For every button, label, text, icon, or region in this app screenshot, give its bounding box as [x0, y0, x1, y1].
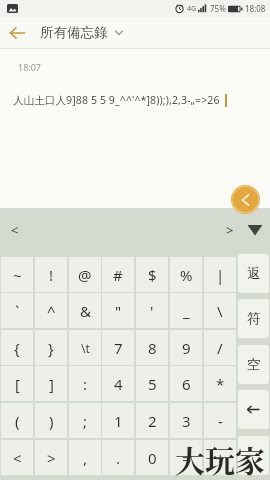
button[interactable]: 7: [102, 330, 134, 365]
staticText: {: [14, 338, 20, 358]
staticText: -: [218, 411, 223, 431]
button[interactable]: >: [35, 440, 67, 475]
button[interactable]: ): [35, 403, 67, 438]
staticText: ,: [83, 448, 88, 468]
button[interactable]: 0: [136, 440, 168, 475]
staticText: ;: [83, 411, 88, 431]
staticText: 18:07: [18, 61, 42, 73]
staticText: ~: [13, 265, 22, 285]
staticText: @: [78, 265, 92, 285]
staticText: [: [15, 374, 20, 394]
button[interactable]: \t: [69, 330, 101, 365]
staticText: 3: [182, 411, 191, 431]
button[interactable]: #: [102, 257, 134, 292]
button[interactable]: 3: [170, 403, 202, 438]
staticText: \: [217, 301, 223, 321]
staticText: 1: [114, 411, 123, 431]
staticText: ^: [47, 301, 56, 321]
button[interactable]: 8: [136, 330, 168, 365]
staticText: 2: [148, 411, 157, 431]
staticText: 9: [182, 338, 191, 358]
staticText: %: [180, 265, 193, 285]
button[interactable]: 返: [238, 254, 269, 293]
staticText: !: [49, 265, 54, 285]
button[interactable]: }: [35, 330, 67, 365]
button[interactable]: ,: [69, 440, 101, 475]
button[interactable]: [: [1, 366, 33, 401]
button[interactable]: *: [204, 366, 236, 401]
staticText: (: [15, 411, 20, 431]
button[interactable]: ": [102, 293, 134, 328]
staticText: ": [115, 301, 122, 321]
button[interactable]: [247, 224, 263, 236]
staticText: `: [15, 301, 20, 321]
button[interactable]: 6: [170, 366, 202, 401]
button[interactable]: (: [1, 403, 33, 438]
button[interactable]: &: [69, 293, 101, 328]
button[interactable]: @: [69, 257, 101, 292]
button[interactable]: :: [69, 366, 101, 401]
staticText: 大玩家: [175, 437, 265, 480]
staticText: 所有備忘錄: [40, 24, 108, 41]
staticText: $: [148, 265, 157, 285]
staticText: =: [182, 448, 191, 468]
button[interactable]: 1: [102, 403, 134, 438]
staticText: *: [216, 374, 225, 394]
button[interactable]: _: [170, 293, 202, 328]
button[interactable]: |: [204, 257, 236, 292]
button[interactable]: ': [136, 293, 168, 328]
button[interactable]: 5: [136, 366, 168, 401]
button[interactable]: [238, 390, 269, 429]
staticText: <: [13, 448, 22, 468]
staticText: +: [216, 448, 225, 468]
button[interactable]: \: [204, 293, 236, 328]
staticText: &: [80, 301, 91, 321]
staticText: ]: [49, 374, 54, 394]
button[interactable]: `: [1, 293, 33, 328]
button[interactable]: %: [170, 257, 202, 292]
button[interactable]: +: [204, 440, 236, 475]
button[interactable]: [231, 185, 260, 214]
staticText: 18:08: [245, 3, 266, 14]
staticText: \t: [81, 340, 90, 356]
staticText: .: [116, 448, 121, 468]
staticText: }: [48, 338, 54, 358]
button[interactable]: {: [1, 330, 33, 365]
button[interactable]: !: [35, 257, 67, 292]
staticText: #: [113, 265, 123, 285]
staticText: 人山土口人9]88 5 5 9_^^'^*]8));),2,3-„=>26: [13, 93, 220, 107]
button[interactable]: 9: [170, 330, 202, 365]
button[interactable]: [0, 17, 34, 48]
button[interactable]: $: [136, 257, 168, 292]
staticText: ': [150, 301, 154, 321]
staticText: _: [183, 301, 190, 321]
staticText: 4: [114, 374, 123, 394]
staticText: 75%: [210, 3, 226, 14]
button[interactable]: .: [102, 440, 134, 475]
staticText: 4G: [187, 4, 197, 14]
button[interactable]: >: [226, 221, 234, 239]
button[interactable]: <: [11, 221, 19, 239]
button[interactable]: <: [1, 440, 33, 475]
button[interactable]: 空: [238, 345, 269, 384]
button[interactable]: ^: [35, 293, 67, 328]
staticText: 5: [148, 374, 157, 394]
staticText: >: [47, 448, 56, 468]
button[interactable]: /: [204, 330, 236, 365]
button[interactable]: -: [204, 403, 236, 438]
staticText: 0: [148, 448, 157, 468]
button[interactable]: 2: [136, 403, 168, 438]
button[interactable]: ;: [69, 403, 101, 438]
button[interactable]: ~: [1, 257, 33, 292]
button[interactable]: 4: [102, 366, 134, 401]
button[interactable]: [238, 436, 269, 475]
button[interactable]: ]: [35, 366, 67, 401]
staticText: 符: [247, 310, 261, 327]
staticText: 返: [247, 265, 261, 282]
button[interactable]: =: [170, 440, 202, 475]
staticText: :: [83, 374, 88, 394]
staticText: |: [216, 265, 225, 285]
staticText: /: [217, 338, 223, 358]
button[interactable]: 符: [238, 299, 269, 338]
staticText: 6: [182, 374, 191, 394]
